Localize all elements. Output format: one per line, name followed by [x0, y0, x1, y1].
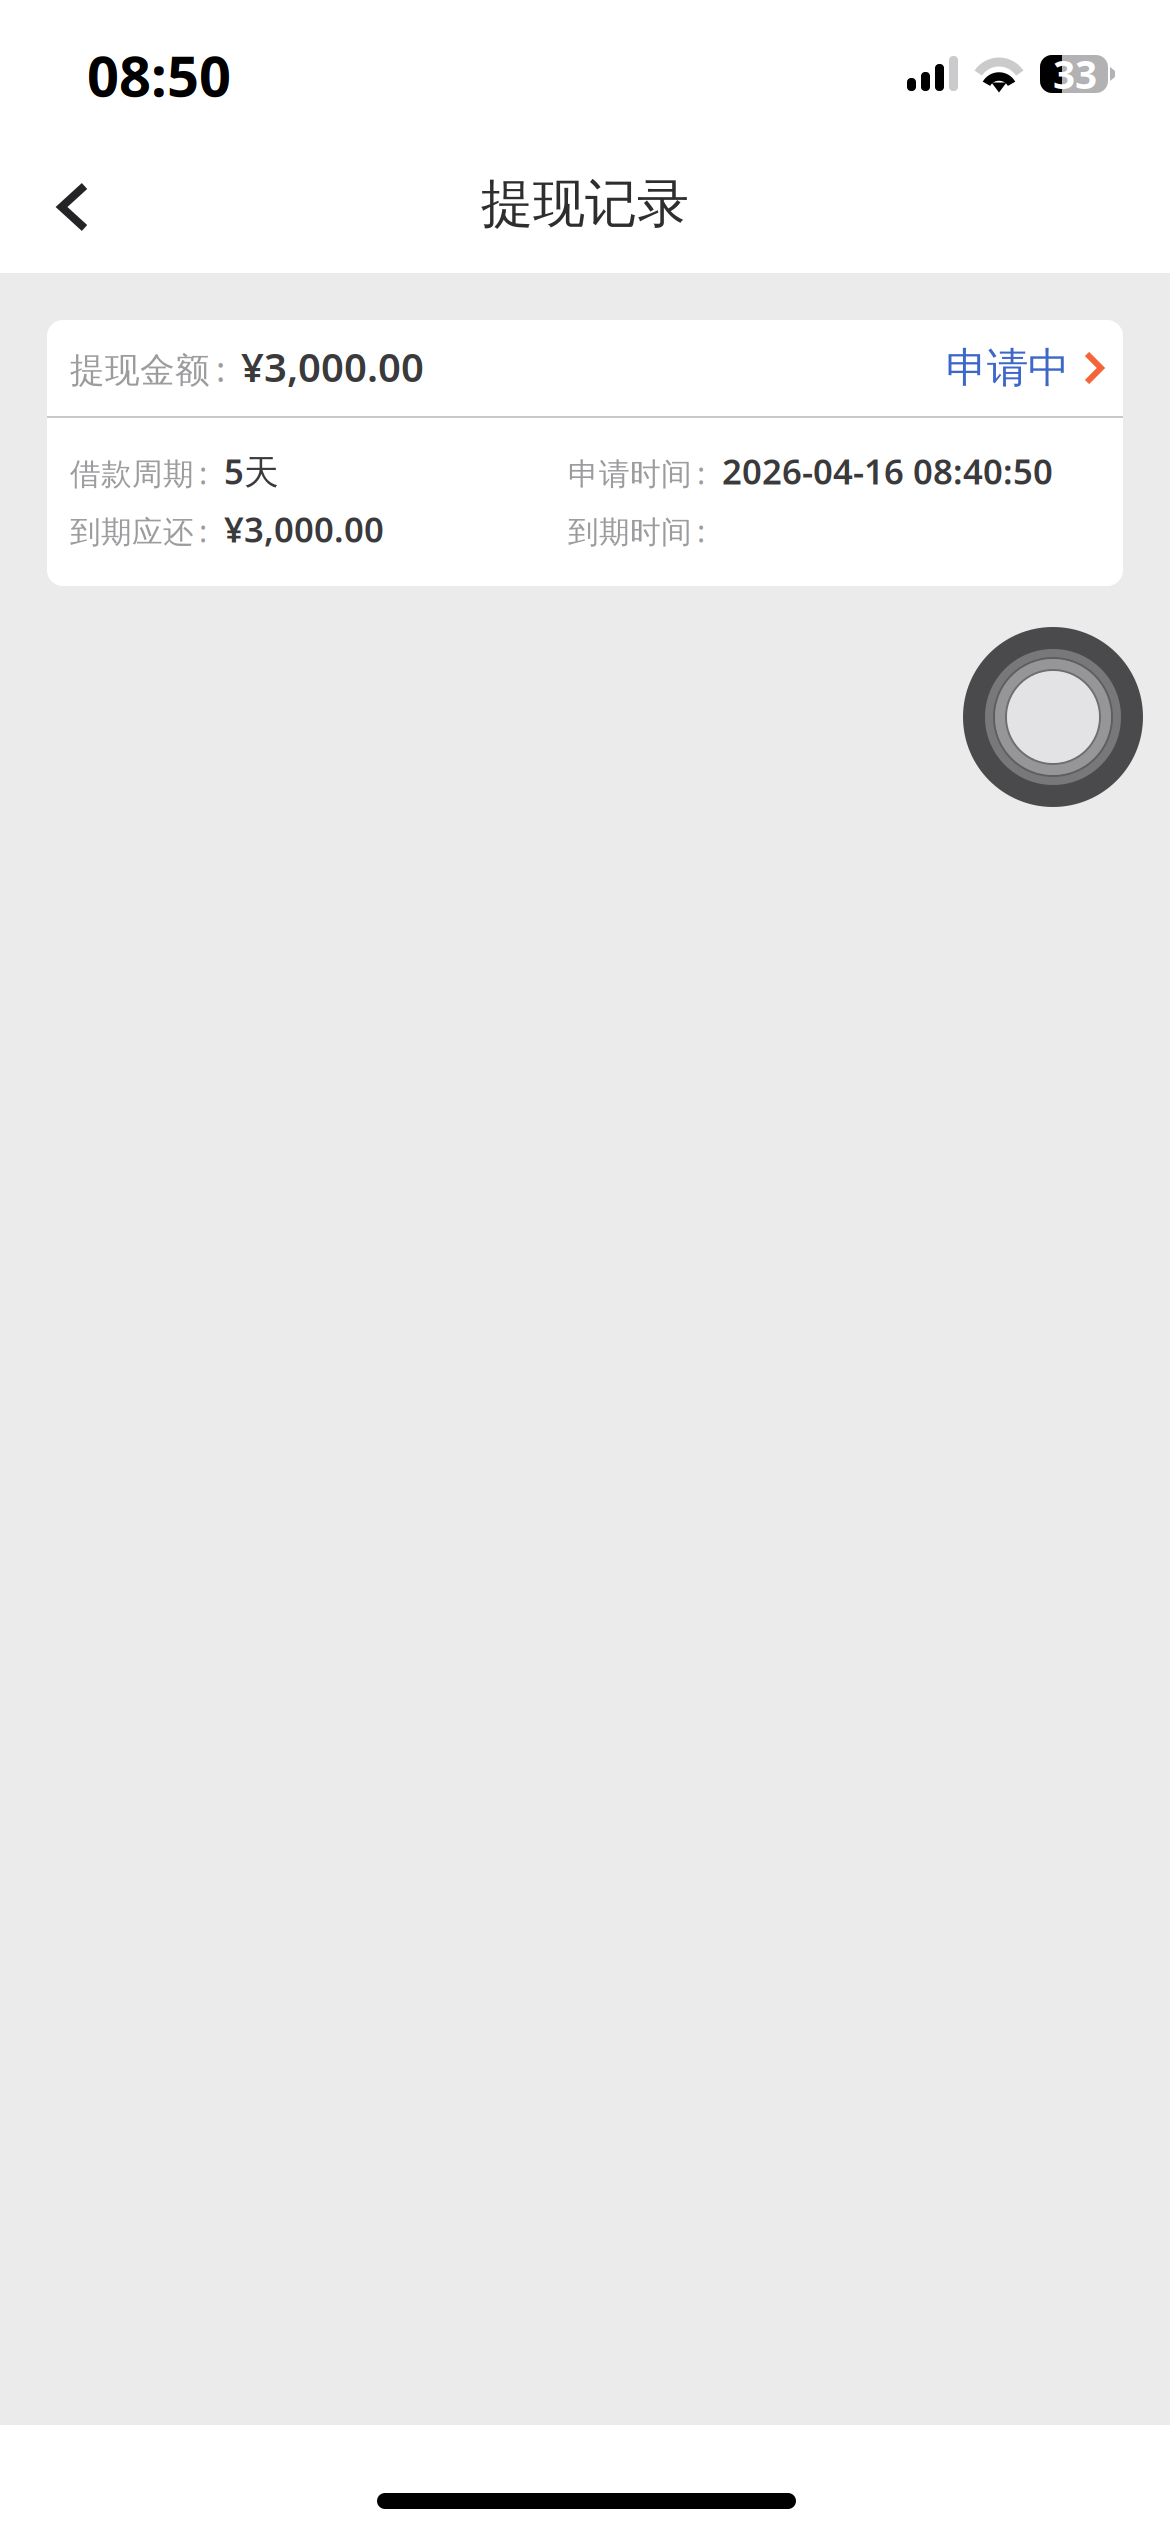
staticText: 到期应还	[70, 513, 194, 551]
staticText: 提现金额	[70, 349, 210, 392]
staticText: 到期时间	[568, 513, 692, 551]
button[interactable]: 提现金额	[47, 320, 1123, 416]
staticText: 借款周期	[70, 455, 194, 493]
staticText: 08:50	[87, 38, 231, 112]
staticText: ¥3,000.00	[241, 340, 424, 393]
staticText: :	[216, 346, 225, 392]
staticText: 申请中	[946, 343, 1069, 393]
staticText: :	[697, 510, 705, 551]
staticText: :	[199, 452, 207, 493]
button[interactable]: AssistiveTouch	[963, 627, 1143, 807]
button[interactable]: Back	[19, 153, 127, 261]
staticText: :	[697, 452, 705, 493]
staticText: 申请时间	[568, 455, 692, 493]
staticText: 2026-04-16 08:40:50	[722, 448, 1053, 494]
staticText: 33	[1053, 48, 1097, 100]
staticText: 5天	[224, 448, 279, 494]
staticText: 提现记录	[481, 172, 689, 236]
staticText: ¥3,000.00	[224, 506, 384, 552]
staticText: :	[199, 510, 207, 551]
